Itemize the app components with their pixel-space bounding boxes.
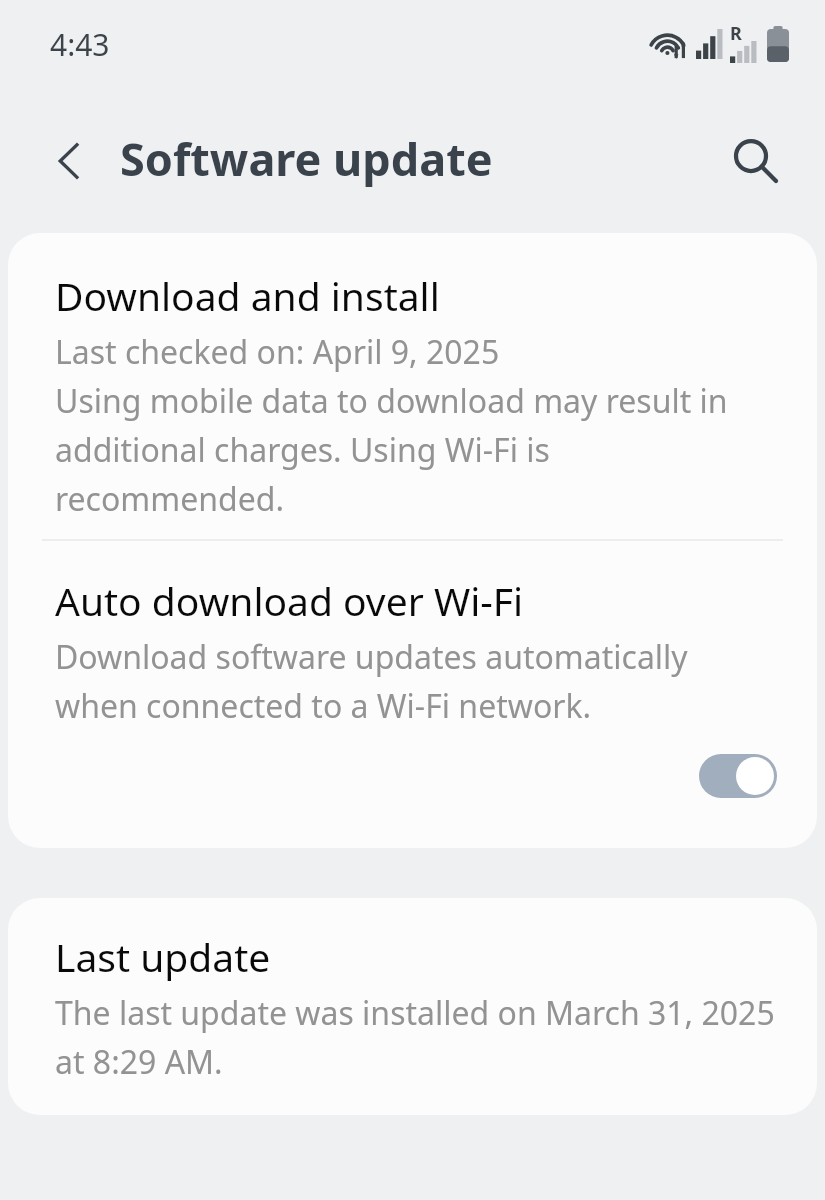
button[interactable]: Download and install: [8, 233, 817, 539]
button[interactable]: Back: [36, 128, 102, 194]
button[interactable]: Last update: [8, 898, 817, 1084]
staticText: Download and install: [55, 269, 440, 322]
staticText: Last update: [55, 930, 271, 983]
button[interactable]: Auto download over Wi-Fi toggle: [699, 754, 777, 798]
staticText: 4:43: [50, 24, 110, 65]
button[interactable]: Auto download over Wi-Fi: [8, 541, 817, 798]
staticText: Last checked on: April 9, 2025 Using mob…: [55, 330, 777, 521]
staticText: Software update: [120, 128, 493, 189]
staticText: Download software updates automatically …: [55, 635, 777, 728]
button[interactable]: Search: [721, 126, 791, 196]
staticText: Auto download over Wi-Fi: [55, 574, 524, 627]
staticText: R: [730, 21, 742, 46]
staticText: The last update was installed on March 3…: [55, 991, 777, 1084]
